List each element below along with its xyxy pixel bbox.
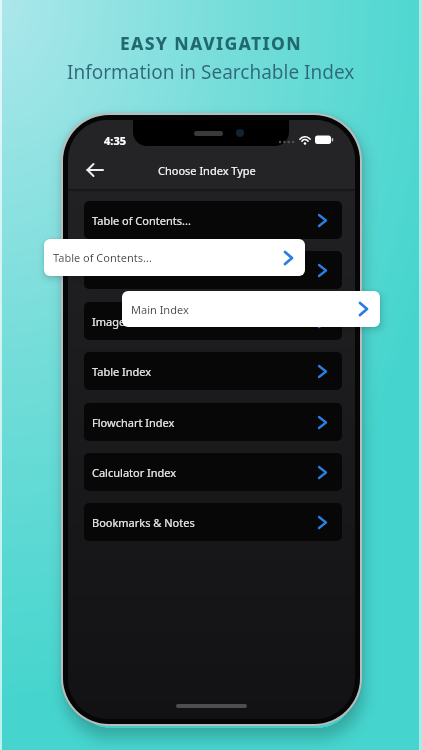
staticText: Table Index: [92, 364, 318, 379]
staticText: 4:35: [104, 133, 126, 148]
staticText: Information in Searchable Index: [67, 59, 355, 85]
button[interactable]: [84, 160, 106, 180]
button[interactable]: Table Index: [84, 352, 342, 390]
staticText: Image Index: [92, 314, 318, 329]
staticText: EASY NAVIGATION: [120, 31, 303, 55]
staticText: Table of Contents...: [92, 213, 318, 228]
button[interactable]: Table of Contents...: [84, 201, 342, 239]
button[interactable]: Table of Contents...: [44, 239, 305, 276]
staticText: Choose Index Type: [158, 163, 256, 178]
button[interactable]: Image Index: [84, 302, 342, 340]
button[interactable]: Flowchart Index: [84, 403, 342, 441]
button[interactable]: Main Index: [122, 291, 380, 327]
staticText: Main Index: [131, 302, 359, 317]
button[interactable]: Bookmarks & Notes: [84, 503, 342, 541]
staticText: Flowchart Index: [92, 415, 318, 430]
staticText: Table of Contents...: [92, 263, 318, 278]
button[interactable]: Calculator Index: [84, 453, 342, 491]
staticText: Calculator Index: [92, 465, 318, 480]
button[interactable]: Table of Contents...: [84, 251, 342, 289]
staticText: Bookmarks & Notes: [92, 515, 318, 530]
staticText: Table of Contents...: [53, 250, 284, 265]
